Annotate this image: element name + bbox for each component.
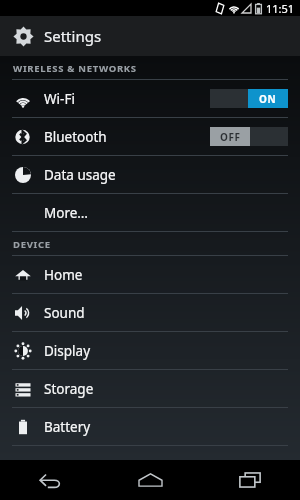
- button[interactable]: Wi-Fi: [0, 80, 300, 117]
- button[interactable]: Home: [122, 461, 178, 499]
- button[interactable]: Battery: [0, 408, 300, 445]
- button[interactable]: Settings: [0, 16, 300, 56]
- staticText: ON: [259, 92, 277, 106]
- staticText: WIRELESS & NETWORKS: [13, 62, 137, 75]
- button[interactable]: Home: [0, 256, 300, 293]
- button[interactable]: Turn off: [210, 89, 288, 108]
- staticText: Battery: [44, 418, 91, 436]
- button[interactable]: Data usage: [0, 156, 300, 193]
- staticText: Wi-Fi: [44, 90, 75, 108]
- staticText: Display: [44, 342, 91, 360]
- button[interactable]: Bluetooth: [0, 118, 300, 155]
- button[interactable]: Turn on: [210, 127, 288, 146]
- button[interactable]: Display: [0, 332, 300, 369]
- staticText: Storage: [44, 380, 94, 398]
- button[interactable]: Storage: [0, 370, 300, 407]
- staticText: More…: [44, 204, 89, 222]
- button[interactable]: More…: [0, 194, 300, 231]
- staticText: Bluetooth: [44, 128, 107, 146]
- button[interactable]: Back: [22, 461, 78, 499]
- staticText: Sound: [44, 304, 85, 322]
- staticText: Settings: [44, 26, 102, 46]
- staticText: Home: [44, 266, 83, 284]
- staticText: Data usage: [44, 166, 116, 184]
- staticText: OFF: [220, 130, 241, 144]
- button[interactable]: Sound: [0, 294, 300, 331]
- button[interactable]: Recent apps: [222, 461, 278, 499]
- staticText: 11:51: [266, 1, 295, 16]
- staticText: DEVICE: [13, 238, 51, 251]
